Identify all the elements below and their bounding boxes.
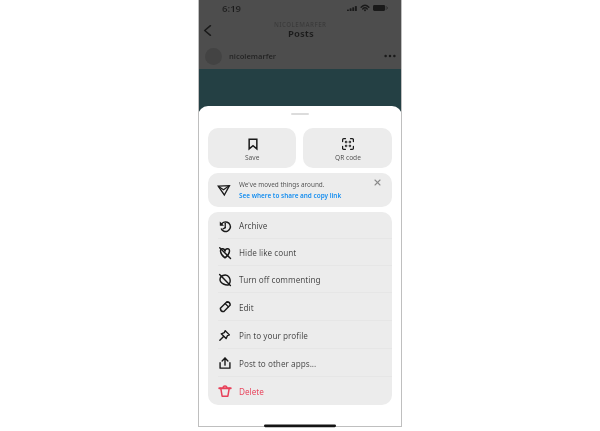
staticText: 6:19 xyxy=(222,2,242,15)
staticText: Posts xyxy=(288,27,314,40)
staticText: See where to share and copy link xyxy=(239,191,342,200)
button[interactable]: Dismiss xyxy=(373,178,381,186)
button[interactable]: Hide like count xyxy=(208,239,392,266)
button[interactable]: Archive xyxy=(208,212,392,239)
staticText: Hide like count xyxy=(239,247,297,258)
staticText: Turn off commenting xyxy=(239,274,321,285)
staticText: Delete xyxy=(239,386,264,397)
staticText: Archive xyxy=(239,220,268,231)
staticText: nicolemarfer xyxy=(229,51,277,61)
button[interactable]: QR code xyxy=(303,128,392,168)
staticText: Edit xyxy=(239,302,254,313)
staticText: Pin to your profile xyxy=(239,330,308,341)
staticText: NICOLEMARFER xyxy=(274,20,327,28)
staticText: Post to other apps... xyxy=(239,358,317,369)
button[interactable]: We've moved things around. xyxy=(208,173,392,207)
button[interactable]: Post to other apps... xyxy=(208,349,392,377)
staticText: We've moved things around. xyxy=(239,180,325,189)
button[interactable]: More options xyxy=(383,49,397,63)
staticText: Save xyxy=(245,153,260,162)
button[interactable]: Turn off commenting xyxy=(208,266,392,293)
staticText: QR code xyxy=(335,153,361,162)
button[interactable]: Back xyxy=(198,21,216,39)
button[interactable]: Edit xyxy=(208,293,392,321)
button[interactable]: Save xyxy=(208,128,296,168)
button[interactable]: Delete xyxy=(208,377,392,405)
button[interactable]: Pin to your profile xyxy=(208,321,392,349)
